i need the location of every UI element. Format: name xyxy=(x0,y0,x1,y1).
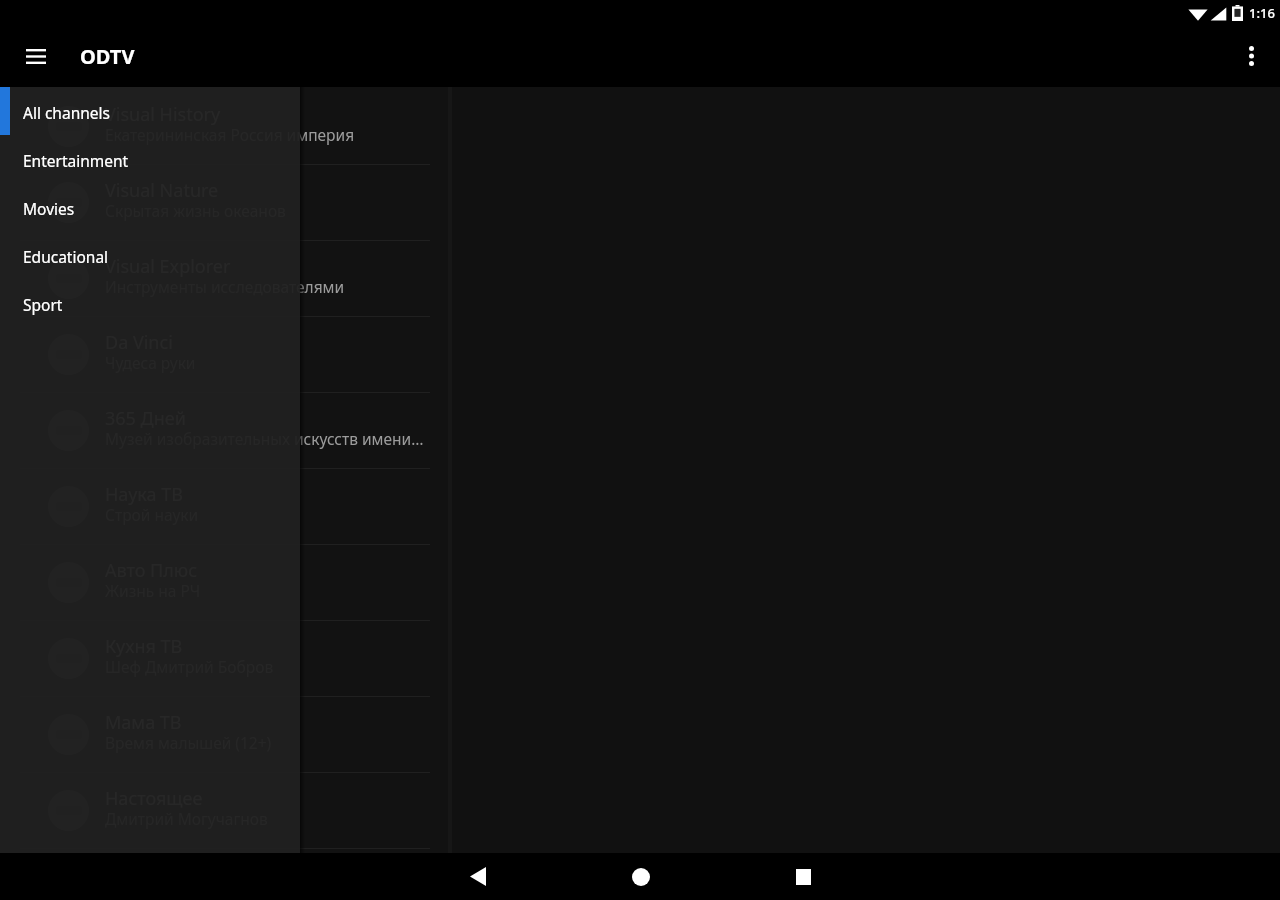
staticText: Educational xyxy=(23,246,109,267)
staticText: Visual History xyxy=(105,102,221,127)
staticText: Entertainment xyxy=(23,150,129,171)
staticText: Музей изобразительных искусств имени Пуш… xyxy=(105,428,424,449)
button[interactable]: Entertainment xyxy=(0,135,300,183)
staticText: Visual Explorer xyxy=(105,254,231,279)
staticText: Екатерининская Россия империя xyxy=(105,124,355,145)
button[interactable]: More options xyxy=(1228,33,1274,79)
button[interactable]: Visual History xyxy=(0,89,452,165)
staticText: 1:16 xyxy=(1249,4,1275,22)
button[interactable]: Recent apps xyxy=(722,853,885,900)
button[interactable]: Visual Nature xyxy=(0,165,452,241)
button[interactable]: Home xyxy=(559,853,722,900)
button[interactable]: Настоящее xyxy=(0,773,452,849)
staticText: Movies xyxy=(23,198,75,219)
button[interactable]: Da Vinci xyxy=(0,317,452,393)
staticText: Sport xyxy=(23,294,63,315)
button[interactable]: Наука ТВ xyxy=(0,469,452,545)
staticText: All channels xyxy=(23,102,110,123)
button[interactable]: Back xyxy=(396,853,559,900)
button[interactable]: Educational xyxy=(0,231,300,279)
button[interactable]: 365 Дней xyxy=(0,393,452,469)
button[interactable]: Sport xyxy=(0,279,300,327)
button[interactable]: Open navigation drawer xyxy=(13,33,59,79)
staticText: Инструменты исследователями xyxy=(105,276,345,297)
button[interactable]: Movies xyxy=(0,183,300,231)
button[interactable]: Visual Explorer xyxy=(0,241,452,317)
button[interactable]: All channels xyxy=(0,87,300,135)
button[interactable]: Кухня ТВ xyxy=(0,621,452,697)
button[interactable]: Мама ТВ xyxy=(0,697,452,773)
button[interactable]: Авто Плюс xyxy=(0,545,452,621)
staticText: ODTV xyxy=(80,43,135,70)
